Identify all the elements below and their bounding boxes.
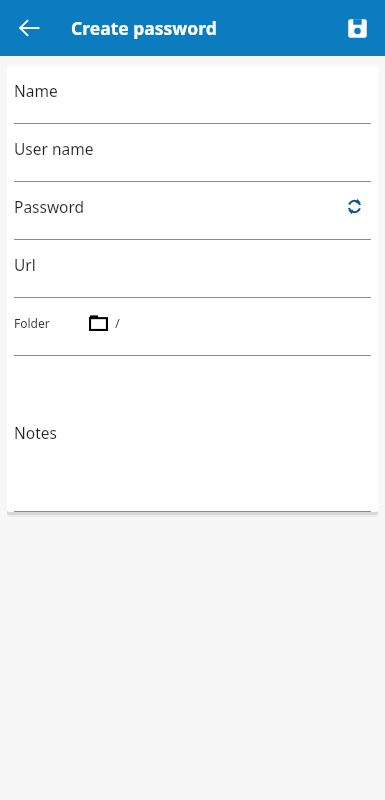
button[interactable]: Save bbox=[336, 7, 378, 49]
button[interactable]: Back bbox=[8, 7, 50, 49]
staticText: Folder bbox=[14, 315, 50, 331]
button[interactable]: Notes bbox=[14, 356, 371, 512]
button[interactable]: User name bbox=[14, 124, 371, 182]
staticText: Url bbox=[14, 254, 36, 275]
staticText: Name bbox=[14, 80, 58, 101]
staticText: Create password bbox=[71, 16, 217, 40]
staticText: Password bbox=[14, 196, 85, 217]
button[interactable]: Password bbox=[14, 182, 371, 240]
button[interactable]: Folder bbox=[14, 298, 371, 356]
button[interactable]: Name bbox=[14, 66, 371, 124]
staticText: Notes bbox=[14, 422, 57, 443]
button[interactable]: Url bbox=[14, 240, 371, 298]
staticText: / bbox=[115, 314, 120, 332]
button[interactable]: Generate password bbox=[337, 189, 371, 223]
staticText: User name bbox=[14, 138, 94, 159]
